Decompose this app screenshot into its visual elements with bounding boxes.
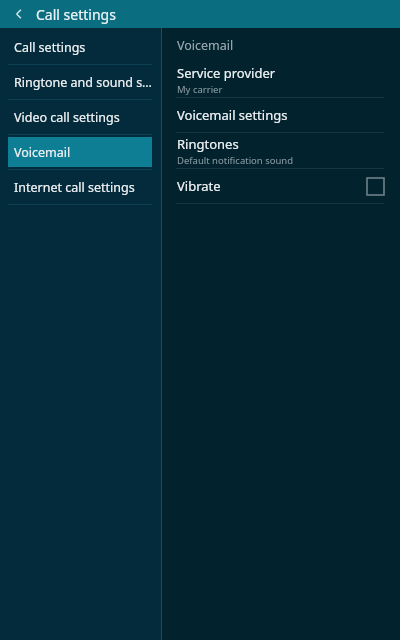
staticText: Vibrate [177, 177, 221, 195]
staticText: Voicemail [14, 144, 71, 161]
button[interactable]: Voicemail settings [162, 98, 400, 132]
staticText: Call settings [36, 5, 116, 24]
staticText: Voicemail [177, 37, 234, 54]
button[interactable]: Back [8, 3, 30, 25]
button[interactable]: Vibrate [162, 169, 400, 203]
button[interactable]: Video call settings [0, 100, 161, 134]
staticText: Video call settings [14, 109, 120, 126]
staticText: Internet call settings [14, 179, 135, 196]
staticText: Voicemail settings [177, 106, 288, 124]
staticText: Call settings [14, 39, 86, 56]
button[interactable]: Internet call settings [0, 170, 161, 204]
staticText: Ringtones [177, 135, 239, 153]
staticText: Service provider [177, 64, 276, 82]
button[interactable]: Ringtone and sound setti.. [0, 65, 161, 99]
button[interactable]: Call settings [0, 30, 161, 64]
staticText: My carrier [177, 83, 223, 96]
button[interactable]: Service provider [162, 62, 400, 97]
button[interactable]: Ringtones [162, 133, 400, 168]
staticText: Default notification sound [177, 154, 294, 167]
button[interactable]: Voicemail [0, 135, 161, 169]
staticText: Ringtone and sound setti.. [14, 74, 155, 91]
